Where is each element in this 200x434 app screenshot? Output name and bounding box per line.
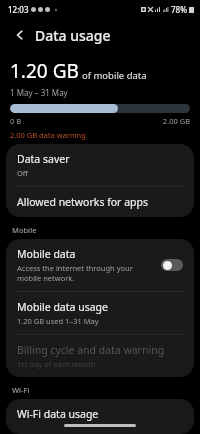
staticText: Allowed networks for apps xyxy=(17,195,149,209)
button[interactable]: Wi-Fi data usage xyxy=(6,399,194,434)
staticText: 1st day of each month xyxy=(17,359,96,369)
button[interactable]: Billing cycle and data warning xyxy=(6,335,194,377)
staticText: 92.28 GB used 29 Apr – 27 May xyxy=(17,423,126,426)
button[interactable]: Allowed networks for apps xyxy=(6,187,194,217)
staticText: 1.20 GB xyxy=(10,58,79,84)
button[interactable]: Mobile data usage xyxy=(6,292,194,334)
staticText: 1.20 GB used 1–31 May xyxy=(17,316,99,326)
staticText: 2.00 GB data warning xyxy=(10,130,86,140)
staticText: Billing cycle and data warning xyxy=(17,343,165,357)
staticText: Mobile data xyxy=(17,247,76,261)
button[interactable]: Data saver xyxy=(6,144,194,186)
staticText: 1 May – 31 May xyxy=(10,87,68,98)
staticText: Data saver xyxy=(17,152,70,166)
staticText: of mobile data xyxy=(82,69,147,82)
staticText: Off xyxy=(17,168,29,178)
staticText: Wi-Fi xyxy=(12,385,30,395)
button[interactable]: Back xyxy=(10,25,30,45)
button[interactable]: Mobile data toggle xyxy=(161,259,183,271)
staticText: 0 B xyxy=(10,116,22,126)
staticText: 78% xyxy=(171,4,187,15)
staticText: Access the internet through your mobile … xyxy=(17,263,155,283)
staticText: 2.00 GB xyxy=(162,116,190,126)
staticText: Mobile xyxy=(12,225,37,235)
staticText: Wi-Fi data usage xyxy=(17,407,99,421)
staticText: Data usage xyxy=(35,26,111,45)
staticText: 12:03 xyxy=(8,4,29,15)
button[interactable]: Mobile data xyxy=(6,239,194,291)
staticText: Mobile data usage xyxy=(17,300,108,314)
